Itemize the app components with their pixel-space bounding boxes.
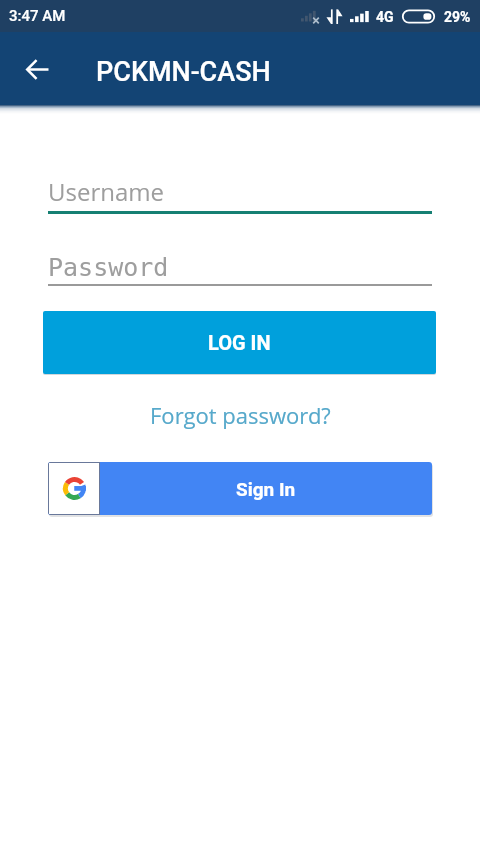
button[interactable]: LOG IN [43,311,436,374]
staticText: 29% [444,9,471,25]
staticText: 4G [376,9,394,25]
button[interactable]: Back [13,45,61,93]
staticText: Forgot password? [150,400,331,430]
button[interactable]: Username [48,170,432,214]
staticText: Username [48,175,165,208]
staticText: Sign In [236,478,296,500]
button[interactable]: Forgot password? [142,397,339,433]
button[interactable]: Password [48,243,432,286]
staticText: LOG IN [208,331,271,354]
staticText: Password [48,253,169,282]
button[interactable]: Sign In [48,462,432,515]
staticText: PCKMN-CASH [96,56,271,88]
staticText: 3:47 AM [9,7,66,25]
